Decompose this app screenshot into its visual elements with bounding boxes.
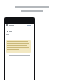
button[interactable]: Menu: [5, 24, 34, 26]
button[interactable]: [6, 40, 31, 53]
